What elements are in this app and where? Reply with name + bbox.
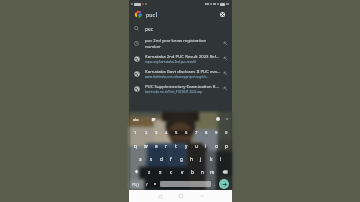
button[interactable]: Insert suggestion bbox=[223, 41, 228, 46]
staticText: h bbox=[190, 156, 193, 162]
button[interactable]: ?1○ bbox=[132, 180, 140, 189]
button[interactable]: abc bbox=[132, 115, 140, 124]
button[interactable]: Clear search bbox=[220, 12, 225, 17]
staticText: puc bbox=[145, 26, 153, 32]
staticText: Karnataka 2nd PUC Result 2023 Relea… bbox=[145, 53, 221, 59]
button[interactable]: w bbox=[141, 139, 151, 152]
button[interactable]: / bbox=[145, 180, 149, 189]
button[interactable]: puc bbox=[129, 21, 232, 36]
button[interactable]: h bbox=[186, 152, 196, 165]
button[interactable]: Recents bbox=[154, 190, 166, 202]
staticText: y bbox=[185, 143, 188, 149]
staticText: abc bbox=[133, 117, 139, 122]
staticText: puc bbox=[146, 11, 155, 18]
button[interactable]: u bbox=[191, 139, 201, 152]
button[interactable]: i bbox=[201, 139, 211, 152]
button[interactable]: f bbox=[166, 152, 176, 165]
staticText: l bbox=[220, 156, 222, 162]
staticText: s bbox=[150, 156, 153, 162]
button[interactable]: Settings bbox=[216, 117, 220, 121]
staticText: www.thehindu-com.cdn.ampproject.org/v/s… bbox=[145, 75, 209, 79]
button[interactable]: Karnataka 2nd PUC Result 2023 Relea… bbox=[129, 51, 232, 66]
button[interactable]: Space bbox=[160, 181, 211, 187]
staticText: i bbox=[205, 143, 207, 149]
staticText: k bbox=[210, 156, 213, 162]
staticText: a bbox=[139, 156, 142, 162]
button[interactable]: Search bbox=[219, 179, 229, 189]
button[interactable]: 3 bbox=[151, 126, 161, 139]
button[interactable]: Stickers bbox=[151, 117, 156, 122]
staticText: p bbox=[225, 143, 228, 149]
staticText: q bbox=[134, 143, 137, 149]
button[interactable]: y bbox=[181, 139, 191, 152]
button[interactable]: g bbox=[176, 152, 186, 165]
button[interactable]: m bbox=[207, 165, 217, 178]
staticText: t bbox=[175, 143, 177, 149]
button[interactable]: v bbox=[177, 165, 187, 178]
staticText: 4 bbox=[165, 130, 168, 136]
staticText: 1 bbox=[134, 130, 137, 136]
button[interactable]: 6 bbox=[181, 126, 191, 139]
button[interactable]: a bbox=[135, 152, 146, 165]
button[interactable]: o bbox=[211, 139, 221, 152]
staticText: n bbox=[201, 169, 204, 175]
button[interactable]: . bbox=[213, 180, 217, 189]
button[interactable]: Collapse keyboard bbox=[225, 117, 229, 121]
button[interactable]: 7 bbox=[191, 126, 201, 139]
staticText: m bbox=[210, 169, 215, 175]
staticText: d bbox=[160, 156, 163, 162]
staticText: karresults.nic.in/First_PUC2021-2022.asp bbox=[145, 90, 203, 94]
button[interactable]: Shift bbox=[129, 165, 144, 178]
button[interactable]: r bbox=[161, 139, 171, 152]
button[interactable]: Insert suggestion bbox=[223, 71, 228, 76]
button[interactable]: PUC Supplementary Examination Resul… bbox=[129, 81, 232, 96]
button[interactable]: q bbox=[130, 139, 141, 152]
button[interactable]: k bbox=[206, 152, 216, 165]
button[interactable]: t bbox=[171, 139, 181, 152]
button[interactable]: e bbox=[151, 139, 161, 152]
button[interactable]: z bbox=[144, 165, 155, 178]
button[interactable]: 2 bbox=[141, 126, 151, 139]
button[interactable]: 0 bbox=[221, 126, 231, 139]
staticText: r bbox=[165, 143, 167, 149]
staticText: puc 2nd year know registration number bbox=[145, 38, 221, 49]
staticText: b bbox=[191, 169, 194, 175]
button[interactable]: Backspace bbox=[217, 165, 232, 178]
staticText: u bbox=[195, 143, 198, 149]
staticText: . bbox=[214, 182, 216, 187]
button[interactable]: Karnataka Govt discloses II PUC eval… bbox=[129, 66, 232, 81]
staticText: 0 bbox=[225, 130, 228, 136]
staticText: c bbox=[170, 169, 173, 175]
button[interactable]: 8 bbox=[201, 126, 211, 139]
button[interactable]: b bbox=[187, 165, 197, 178]
button[interactable]: d bbox=[156, 152, 166, 165]
button[interactable]: puc 2nd year know registration number bbox=[129, 36, 232, 51]
staticText: 5 bbox=[175, 130, 178, 136]
staticText: g bbox=[180, 156, 183, 162]
button[interactable]: Voice input bbox=[152, 181, 158, 187]
button[interactable]: l bbox=[216, 152, 226, 165]
button[interactable]: 4 bbox=[161, 126, 171, 139]
staticText: e bbox=[155, 143, 158, 149]
staticText: w bbox=[144, 143, 148, 149]
button[interactable]: x bbox=[155, 165, 166, 178]
button[interactable]: n bbox=[197, 165, 207, 178]
button[interactable]: j bbox=[196, 152, 206, 165]
staticText: ?1○ bbox=[132, 182, 140, 187]
button[interactable]: Back bbox=[196, 190, 208, 202]
staticText: o bbox=[215, 143, 218, 149]
staticText: f bbox=[170, 156, 172, 162]
staticText: 9 bbox=[215, 130, 218, 136]
button[interactable]: 9 bbox=[211, 126, 221, 139]
button[interactable]: Insert suggestion bbox=[223, 86, 228, 91]
button[interactable]: p bbox=[221, 139, 231, 152]
button[interactable]: Home bbox=[175, 190, 187, 202]
button[interactable]: c bbox=[166, 165, 177, 178]
button[interactable]: s bbox=[146, 152, 156, 165]
button[interactable]: 1 bbox=[130, 126, 141, 139]
button[interactable]: Insert suggestion bbox=[223, 56, 228, 61]
staticText: 6 bbox=[185, 130, 188, 136]
staticText: 8 bbox=[205, 130, 208, 136]
staticText: 2 bbox=[145, 130, 148, 136]
button[interactable]: 5 bbox=[171, 126, 181, 139]
